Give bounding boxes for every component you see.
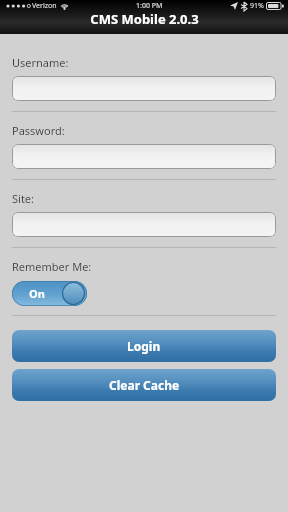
staticText: 91% — [250, 1, 264, 11]
staticText: Verizon — [32, 1, 57, 11]
staticText: Site: — [12, 191, 34, 206]
staticText: On — [29, 286, 45, 301]
button[interactable] — [12, 144, 276, 169]
staticText: CMS Mobile 2.0.3 — [90, 10, 199, 28]
button[interactable]: Clear Cache — [12, 369, 276, 401]
staticText: Remember Me: — [12, 259, 92, 274]
button[interactable]: Login — [12, 330, 276, 362]
button[interactable] — [12, 76, 276, 101]
button[interactable]: Remember Me toggle, On — [12, 281, 87, 306]
staticText: 1:00 PM — [136, 1, 163, 11]
staticText: Clear Cache — [109, 377, 180, 393]
button[interactable] — [12, 212, 276, 237]
staticText: Login — [127, 338, 161, 354]
staticText: Password: — [12, 123, 65, 138]
staticText: Username: — [12, 55, 69, 70]
